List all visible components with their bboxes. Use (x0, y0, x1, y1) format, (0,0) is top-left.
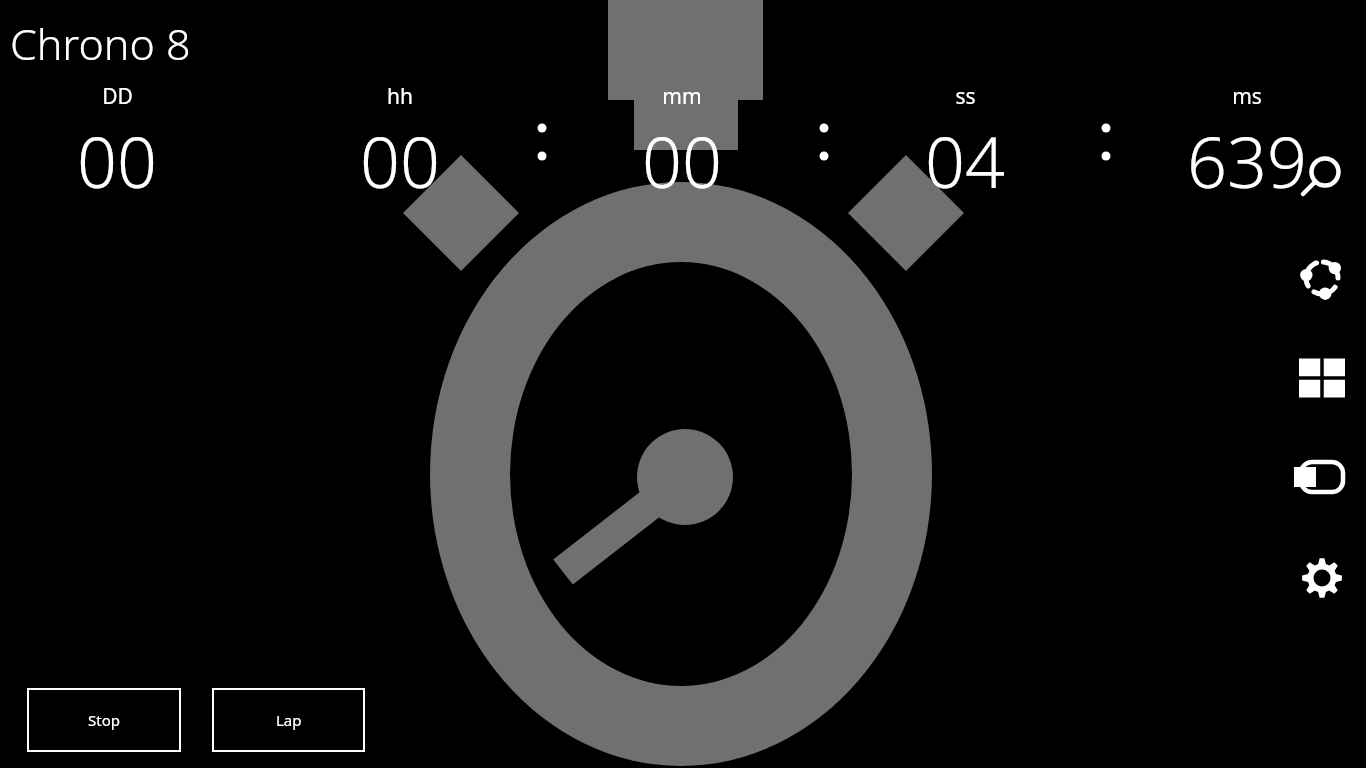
button[interactable]: Share (1286, 242, 1358, 314)
staticText: 00 (360, 113, 440, 208)
staticText: 00 (642, 113, 722, 208)
staticText: Lap (276, 710, 302, 730)
staticText: DD (102, 82, 133, 111)
staticText: 04 (925, 113, 1005, 208)
staticText: 00 (77, 113, 157, 208)
staticText: Chrono 8 (10, 14, 191, 73)
button[interactable]: Lap (212, 688, 365, 752)
staticText: mm (662, 82, 702, 111)
staticText: hh (387, 82, 413, 111)
button[interactable]: Settings (1286, 542, 1358, 614)
button[interactable]: Start (1286, 342, 1358, 414)
button[interactable]: Stop (27, 688, 181, 752)
staticText: ms (1232, 82, 1262, 111)
staticText: ss (955, 82, 976, 111)
button[interactable]: Search (1286, 140, 1358, 212)
button[interactable]: Project (1286, 441, 1358, 513)
staticText: Stop (88, 710, 120, 730)
staticText: 639 (1187, 113, 1307, 208)
